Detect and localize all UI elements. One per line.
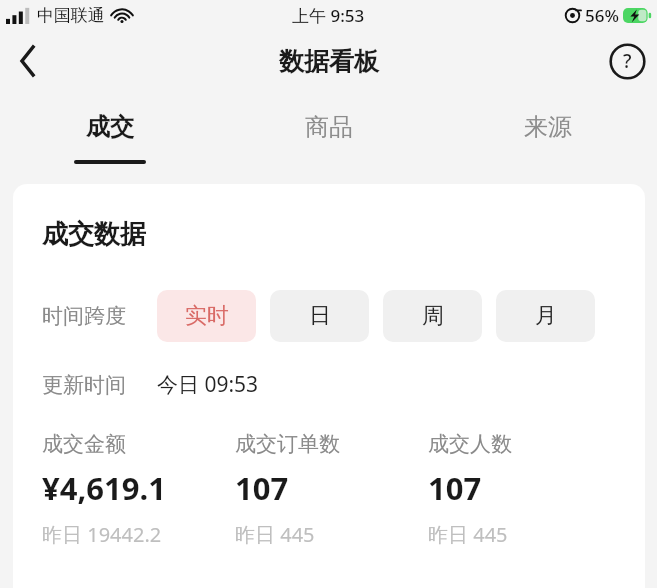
staticText: 月 xyxy=(535,302,557,330)
staticText: 来源 xyxy=(524,112,572,142)
button[interactable]: 实时 xyxy=(157,290,256,342)
staticText: 时间跨度 xyxy=(42,303,126,329)
button[interactable]: 周 xyxy=(383,290,482,342)
staticText: 周 xyxy=(422,302,444,330)
button[interactable]: 月 xyxy=(496,290,595,342)
staticText: 成交金额 xyxy=(42,431,126,457)
staticText: 实时 xyxy=(185,302,229,330)
staticText: 上午 9:53 xyxy=(292,4,365,27)
staticText: ¥4,619.1 xyxy=(42,467,166,509)
button[interactable]: 商品 xyxy=(219,92,438,184)
button[interactable]: 日 xyxy=(270,290,369,342)
button[interactable]: Back xyxy=(6,39,50,83)
button[interactable]: 成交 xyxy=(0,92,219,184)
staticText: 107 xyxy=(235,467,289,509)
staticText: 107 xyxy=(428,467,482,509)
staticText: 商品 xyxy=(305,112,353,142)
staticText: 昨日 445 xyxy=(428,521,508,548)
staticText: 56% xyxy=(585,4,619,27)
staticText: 成交 xyxy=(86,112,134,142)
staticText: 昨日 445 xyxy=(235,521,315,548)
staticText: 昨日 19442.2 xyxy=(42,521,162,548)
staticText: 中国联通 xyxy=(37,5,105,26)
staticText: 数据看板 xyxy=(279,46,379,77)
button[interactable]: 来源 xyxy=(438,92,657,184)
button[interactable]: Help xyxy=(606,40,648,82)
staticText: 日 xyxy=(309,302,331,330)
staticText: ? xyxy=(623,48,632,74)
staticText: 今日 09:53 xyxy=(157,370,259,399)
staticText: 成交数据 xyxy=(42,218,146,251)
staticText: 更新时间 xyxy=(42,372,126,398)
staticText: 成交人数 xyxy=(428,431,512,457)
staticText: 成交订单数 xyxy=(235,431,340,457)
